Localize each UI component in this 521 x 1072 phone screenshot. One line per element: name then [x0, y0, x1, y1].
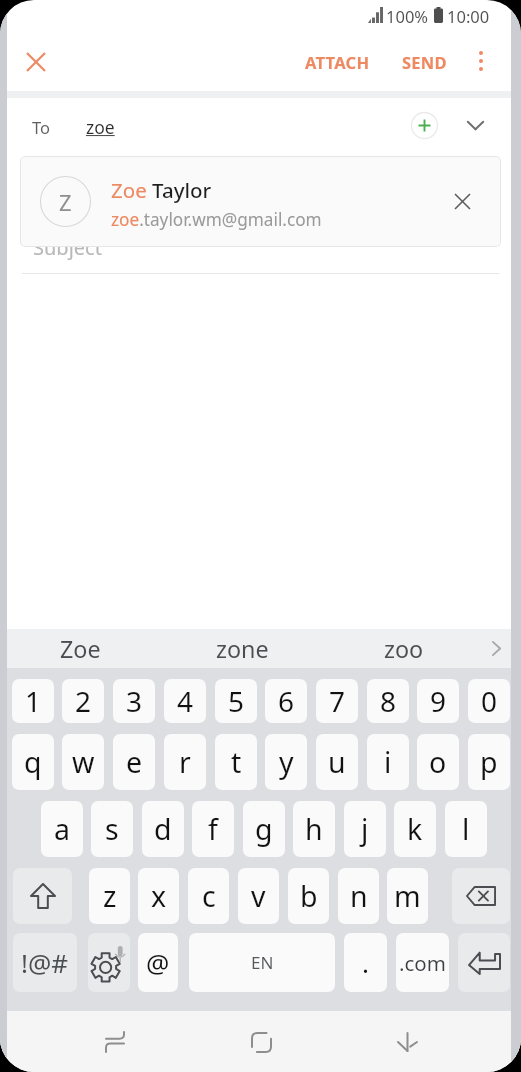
- button[interactable]: 3: [113, 679, 155, 723]
- button[interactable]: l: [445, 801, 487, 857]
- staticText: Zoe: [60, 633, 101, 665]
- button[interactable]: Z: [20, 156, 501, 247]
- button[interactable]: z: [89, 868, 130, 924]
- staticText: j: [361, 810, 369, 849]
- button[interactable]: .com: [396, 933, 449, 992]
- button[interactable]: 1: [12, 679, 54, 723]
- button[interactable]: 6: [265, 679, 307, 723]
- button[interactable]: 0: [468, 679, 510, 723]
- button[interactable]: o: [417, 734, 459, 790]
- button[interactable]: Keyboard settings: [88, 933, 130, 992]
- button[interactable]: 8: [367, 679, 409, 723]
- button[interactable]: d: [142, 801, 184, 857]
- staticText: SEND: [402, 51, 447, 73]
- staticText: 10:00: [447, 5, 490, 27]
- button[interactable]: Close: [14, 40, 57, 83]
- staticText: v: [251, 877, 266, 916]
- button[interactable]: Hide keyboard: [367, 1022, 447, 1062]
- staticText: s: [105, 810, 119, 849]
- staticText: zoe: [86, 115, 115, 139]
- button[interactable]: i: [367, 734, 409, 790]
- staticText: o: [429, 743, 447, 782]
- staticText: zoo: [384, 633, 424, 665]
- button[interactable]: Enter: [458, 933, 510, 992]
- staticText: EN: [251, 951, 274, 974]
- staticText: h: [305, 810, 323, 849]
- button[interactable]: 9: [417, 679, 459, 723]
- button[interactable]: Expand recipients: [453, 103, 497, 147]
- button[interactable]: More options: [459, 39, 502, 82]
- button[interactable]: Space: [189, 933, 335, 992]
- button[interactable]: y: [265, 734, 307, 790]
- staticText: 6: [278, 682, 295, 720]
- button[interactable]: v: [238, 868, 279, 924]
- staticText: Z: [59, 187, 72, 217]
- staticText: e: [126, 743, 143, 782]
- staticText: y: [279, 743, 294, 782]
- staticText: @: [146, 945, 170, 980]
- button[interactable]: j: [344, 801, 386, 857]
- button[interactable]: SEND: [392, 40, 457, 83]
- button[interactable]: g: [243, 801, 285, 857]
- staticText: i: [384, 743, 392, 782]
- button[interactable]: x: [138, 868, 179, 924]
- staticText: d: [154, 810, 172, 849]
- button[interactable]: @: [138, 933, 178, 992]
- staticText: 9: [430, 682, 447, 720]
- staticText: t: [231, 743, 242, 782]
- button[interactable]: zoo: [323, 629, 484, 668]
- staticText: 3: [126, 682, 143, 720]
- button[interactable]: Zoe: [0, 629, 161, 668]
- button[interactable]: 7: [316, 679, 358, 723]
- button[interactable]: t: [215, 734, 257, 790]
- staticText: f: [208, 810, 218, 849]
- staticText: w: [72, 743, 95, 782]
- staticText: u: [328, 743, 346, 782]
- button[interactable]: q: [12, 734, 54, 790]
- button[interactable]: n: [338, 868, 379, 924]
- button[interactable]: Recents: [75, 1022, 155, 1062]
- staticText: b: [300, 877, 318, 916]
- button[interactable]: Add recipient: [402, 103, 446, 147]
- staticText: To: [32, 116, 51, 138]
- button[interactable]: ATTACH: [293, 40, 381, 83]
- staticText: .com: [399, 949, 446, 977]
- staticText: 7: [329, 682, 346, 720]
- button[interactable]: a: [41, 801, 83, 857]
- staticText: q: [24, 743, 42, 782]
- button[interactable]: zone: [162, 629, 323, 668]
- staticText: n: [350, 877, 368, 916]
- button[interactable]: Symbols: [13, 933, 77, 992]
- button[interactable]: zoe: [86, 115, 115, 139]
- button[interactable]: 2: [62, 679, 104, 723]
- button[interactable]: More suggestions: [478, 629, 515, 668]
- staticText: 0: [481, 682, 498, 720]
- staticText: 100%: [386, 5, 429, 27]
- button[interactable]: r: [164, 734, 206, 790]
- button[interactable]: u: [316, 734, 358, 790]
- button[interactable]: b: [288, 868, 329, 924]
- staticText: 2: [75, 682, 92, 720]
- button[interactable]: m: [387, 868, 428, 924]
- button[interactable]: s: [91, 801, 133, 857]
- button[interactable]: 5: [215, 679, 257, 723]
- staticText: zoe.taylor.wm@gmail.com: [111, 208, 322, 231]
- button[interactable]: Remove recipient: [441, 180, 484, 223]
- button[interactable]: k: [394, 801, 436, 857]
- button[interactable]: e: [113, 734, 155, 790]
- staticText: l: [462, 810, 470, 849]
- button[interactable]: Backspace: [452, 868, 510, 924]
- button[interactable]: .: [344, 933, 387, 992]
- button[interactable]: f: [192, 801, 234, 857]
- staticText: a: [54, 810, 70, 849]
- button[interactable]: Shift: [13, 868, 72, 924]
- button[interactable]: c: [188, 868, 229, 924]
- staticText: x: [151, 877, 167, 916]
- staticText: z: [103, 877, 117, 916]
- button[interactable]: w: [62, 734, 104, 790]
- button[interactable]: 4: [164, 679, 206, 723]
- button[interactable]: h: [293, 801, 335, 857]
- button[interactable]: p: [468, 734, 510, 790]
- staticText: 1: [25, 682, 42, 720]
- button[interactable]: Home: [221, 1022, 301, 1062]
